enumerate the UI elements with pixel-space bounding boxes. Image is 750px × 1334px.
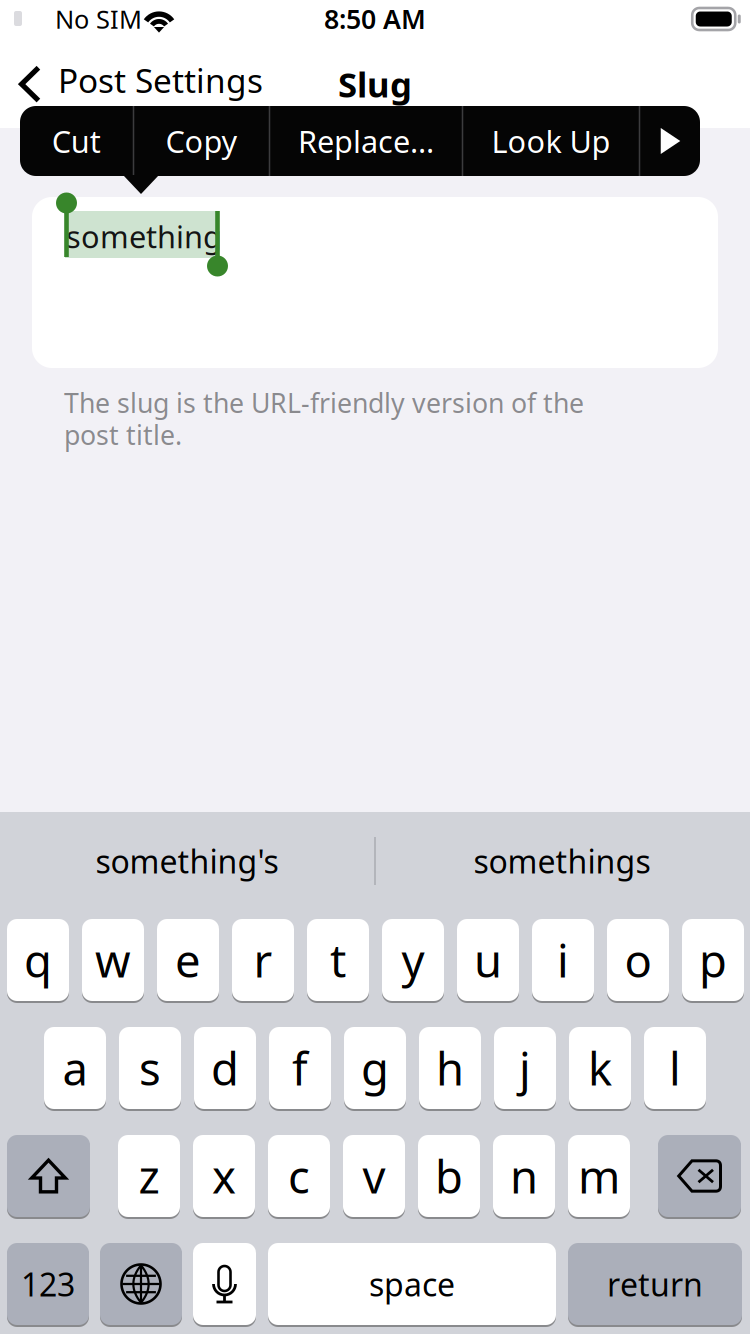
button[interactable]: l <box>644 1026 706 1110</box>
button[interactable]: z <box>118 1134 180 1218</box>
button[interactable]: k <box>569 1026 631 1110</box>
staticText: d <box>211 1038 239 1098</box>
button[interactable]: Delete <box>658 1134 741 1218</box>
button[interactable]: v <box>343 1134 405 1218</box>
button[interactable]: m <box>568 1134 630 1218</box>
staticText: y <box>401 930 424 990</box>
staticText: h <box>436 1038 464 1098</box>
button[interactable]: j <box>494 1026 556 1110</box>
button[interactable]: space <box>268 1242 556 1326</box>
staticText: u <box>474 930 502 990</box>
staticText: Post Settings <box>58 58 263 102</box>
staticText: r <box>253 930 272 990</box>
staticText: space <box>369 1263 455 1305</box>
button[interactable]: d <box>194 1026 256 1110</box>
button[interactable]: somethings <box>374 812 750 902</box>
staticText: z <box>138 1146 159 1206</box>
button[interactable]: x <box>193 1134 255 1218</box>
button[interactable]: g <box>344 1026 406 1110</box>
button[interactable]: Look Up <box>463 106 639 176</box>
staticText: something <box>66 216 222 257</box>
button[interactable]: p <box>682 918 744 1002</box>
button[interactable]: Copy <box>134 106 269 176</box>
button[interactable]: More actions <box>640 106 700 176</box>
staticText: a <box>62 1038 87 1098</box>
button[interactable]: e <box>157 918 219 1002</box>
button[interactable]: t <box>307 918 369 1002</box>
staticText: w <box>95 930 131 990</box>
staticText: t <box>330 930 346 990</box>
staticText: s <box>139 1038 161 1098</box>
staticText: g <box>361 1038 389 1098</box>
staticText: e <box>175 930 201 990</box>
button[interactable]: Replace... <box>270 106 462 176</box>
button[interactable]: c <box>268 1134 330 1218</box>
staticText: something's <box>95 840 278 882</box>
staticText: c <box>288 1146 310 1206</box>
button[interactable]: w <box>82 918 144 1002</box>
button[interactable]: i <box>532 918 594 1002</box>
button[interactable]: a <box>44 1026 106 1110</box>
button[interactable]: Post Settings <box>0 44 277 128</box>
staticText: post title. <box>64 417 182 452</box>
button[interactable]: o <box>607 918 669 1002</box>
staticText: x <box>212 1146 236 1206</box>
staticText: m <box>578 1146 620 1206</box>
staticText: i <box>557 930 569 990</box>
staticText: f <box>292 1038 308 1098</box>
button[interactable]: f <box>269 1026 331 1110</box>
staticText: p <box>699 930 727 990</box>
button[interactable]: n <box>493 1134 555 1218</box>
staticText: k <box>588 1038 612 1098</box>
staticText: v <box>362 1146 385 1206</box>
staticText: The slug is the URL-friendly version of … <box>64 385 584 420</box>
staticText: o <box>624 930 651 990</box>
button[interactable]: h <box>419 1026 481 1110</box>
staticText: 8:50 AM <box>324 1 426 36</box>
button[interactable]: r <box>232 918 294 1002</box>
staticText: somethings <box>473 840 650 882</box>
staticText: Slug <box>338 61 412 107</box>
button[interactable]: s <box>119 1026 181 1110</box>
staticText: n <box>510 1146 538 1206</box>
staticText: j <box>519 1038 531 1098</box>
button[interactable]: Shift <box>7 1134 90 1218</box>
staticText: l <box>669 1038 681 1098</box>
button[interactable]: something's <box>0 812 374 902</box>
button[interactable]: Dictate <box>193 1242 256 1326</box>
button[interactable]: y <box>382 918 444 1002</box>
button[interactable]: Cut <box>20 106 133 176</box>
button[interactable]: b <box>418 1134 480 1218</box>
staticText: b <box>435 1146 463 1206</box>
button[interactable]: Next keyboard <box>100 1242 182 1326</box>
staticText: Cut <box>52 121 101 161</box>
staticText: 123 <box>21 1263 75 1305</box>
staticText: q <box>24 930 52 990</box>
staticText: Look Up <box>491 121 610 161</box>
button[interactable]: u <box>457 918 519 1002</box>
staticText: No SIM <box>55 2 142 36</box>
staticText: Copy <box>165 121 237 161</box>
staticText: Replace... <box>298 121 434 161</box>
button[interactable]: q <box>7 918 69 1002</box>
staticText: return <box>607 1263 703 1305</box>
button[interactable]: return <box>568 1242 742 1326</box>
button[interactable]: 123 <box>7 1242 89 1326</box>
